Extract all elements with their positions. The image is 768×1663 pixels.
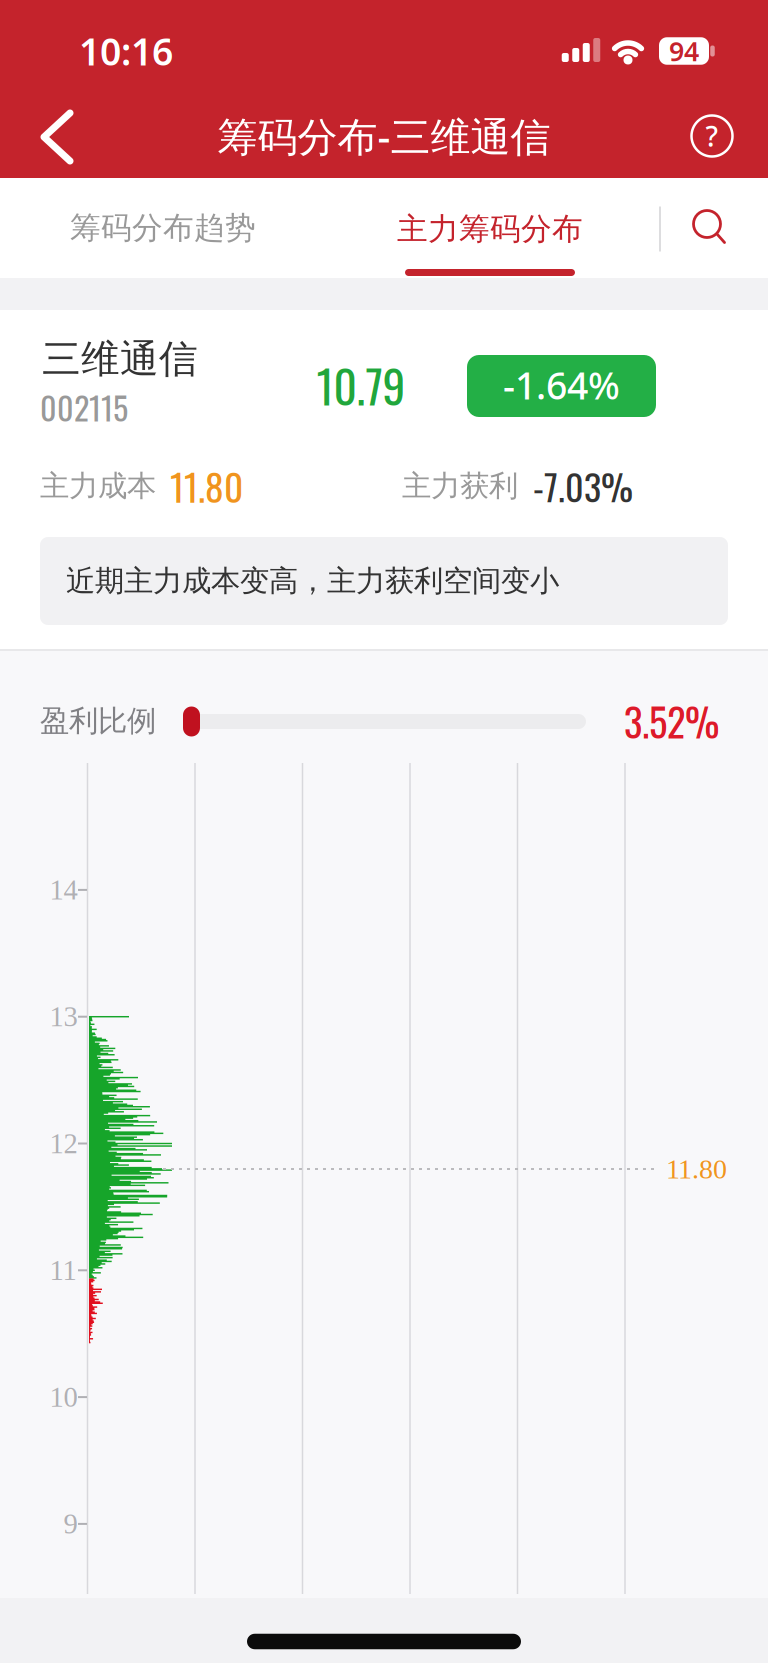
staticText: 10.79 xyxy=(316,351,405,419)
button[interactable]: Help xyxy=(688,112,736,160)
button[interactable]: Back xyxy=(30,102,90,172)
staticText: 13 xyxy=(49,1001,77,1032)
button[interactable]: 筹码分布趋势 xyxy=(38,178,288,278)
staticText: -1.64% xyxy=(503,360,620,410)
staticText: 10 xyxy=(49,1381,77,1413)
staticText: 3.52% xyxy=(624,692,719,750)
staticText: 主力获利 xyxy=(402,468,518,504)
staticText: 002115 xyxy=(40,383,128,431)
staticText: ? xyxy=(705,117,718,155)
staticText: 盈利比例 xyxy=(40,703,156,739)
staticText: 主力成本 xyxy=(40,468,156,504)
staticText: 10:16 xyxy=(79,26,173,76)
staticText: 12 xyxy=(49,1128,77,1159)
staticText: 主力筹码分布 xyxy=(397,210,583,248)
staticText: 94 xyxy=(669,33,699,69)
staticText: 9 xyxy=(63,1508,77,1540)
staticText: 筹码分布-三维通信 xyxy=(217,109,550,162)
staticText: 14 xyxy=(49,874,77,906)
staticText: 三维通信 xyxy=(42,335,198,383)
staticText: 11 xyxy=(49,1254,77,1286)
staticText: 11.80 xyxy=(666,1153,727,1184)
button[interactable]: 主力筹码分布 xyxy=(365,178,615,278)
staticText: 近期主力成本变高，主力获利空间变小 xyxy=(66,563,559,599)
staticText: 筹码分布趋势 xyxy=(70,209,256,247)
button[interactable]: Search xyxy=(680,198,740,258)
staticText: -7.03% xyxy=(533,459,633,513)
staticText: 11.80 xyxy=(170,458,243,514)
